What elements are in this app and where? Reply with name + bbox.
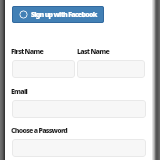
button[interactable] <box>77 60 145 78</box>
staticText: First Name <box>11 47 44 57</box>
staticText: Sign up with Facebook <box>31 10 97 20</box>
staticText: Choose a Password <box>11 126 68 136</box>
staticText: Last Name <box>77 47 110 57</box>
button[interactable]: Sign up with Facebook <box>12 6 104 23</box>
button[interactable] <box>12 100 146 118</box>
staticText: Email <box>11 87 28 97</box>
button[interactable] <box>12 139 146 157</box>
button[interactable] <box>12 60 75 78</box>
